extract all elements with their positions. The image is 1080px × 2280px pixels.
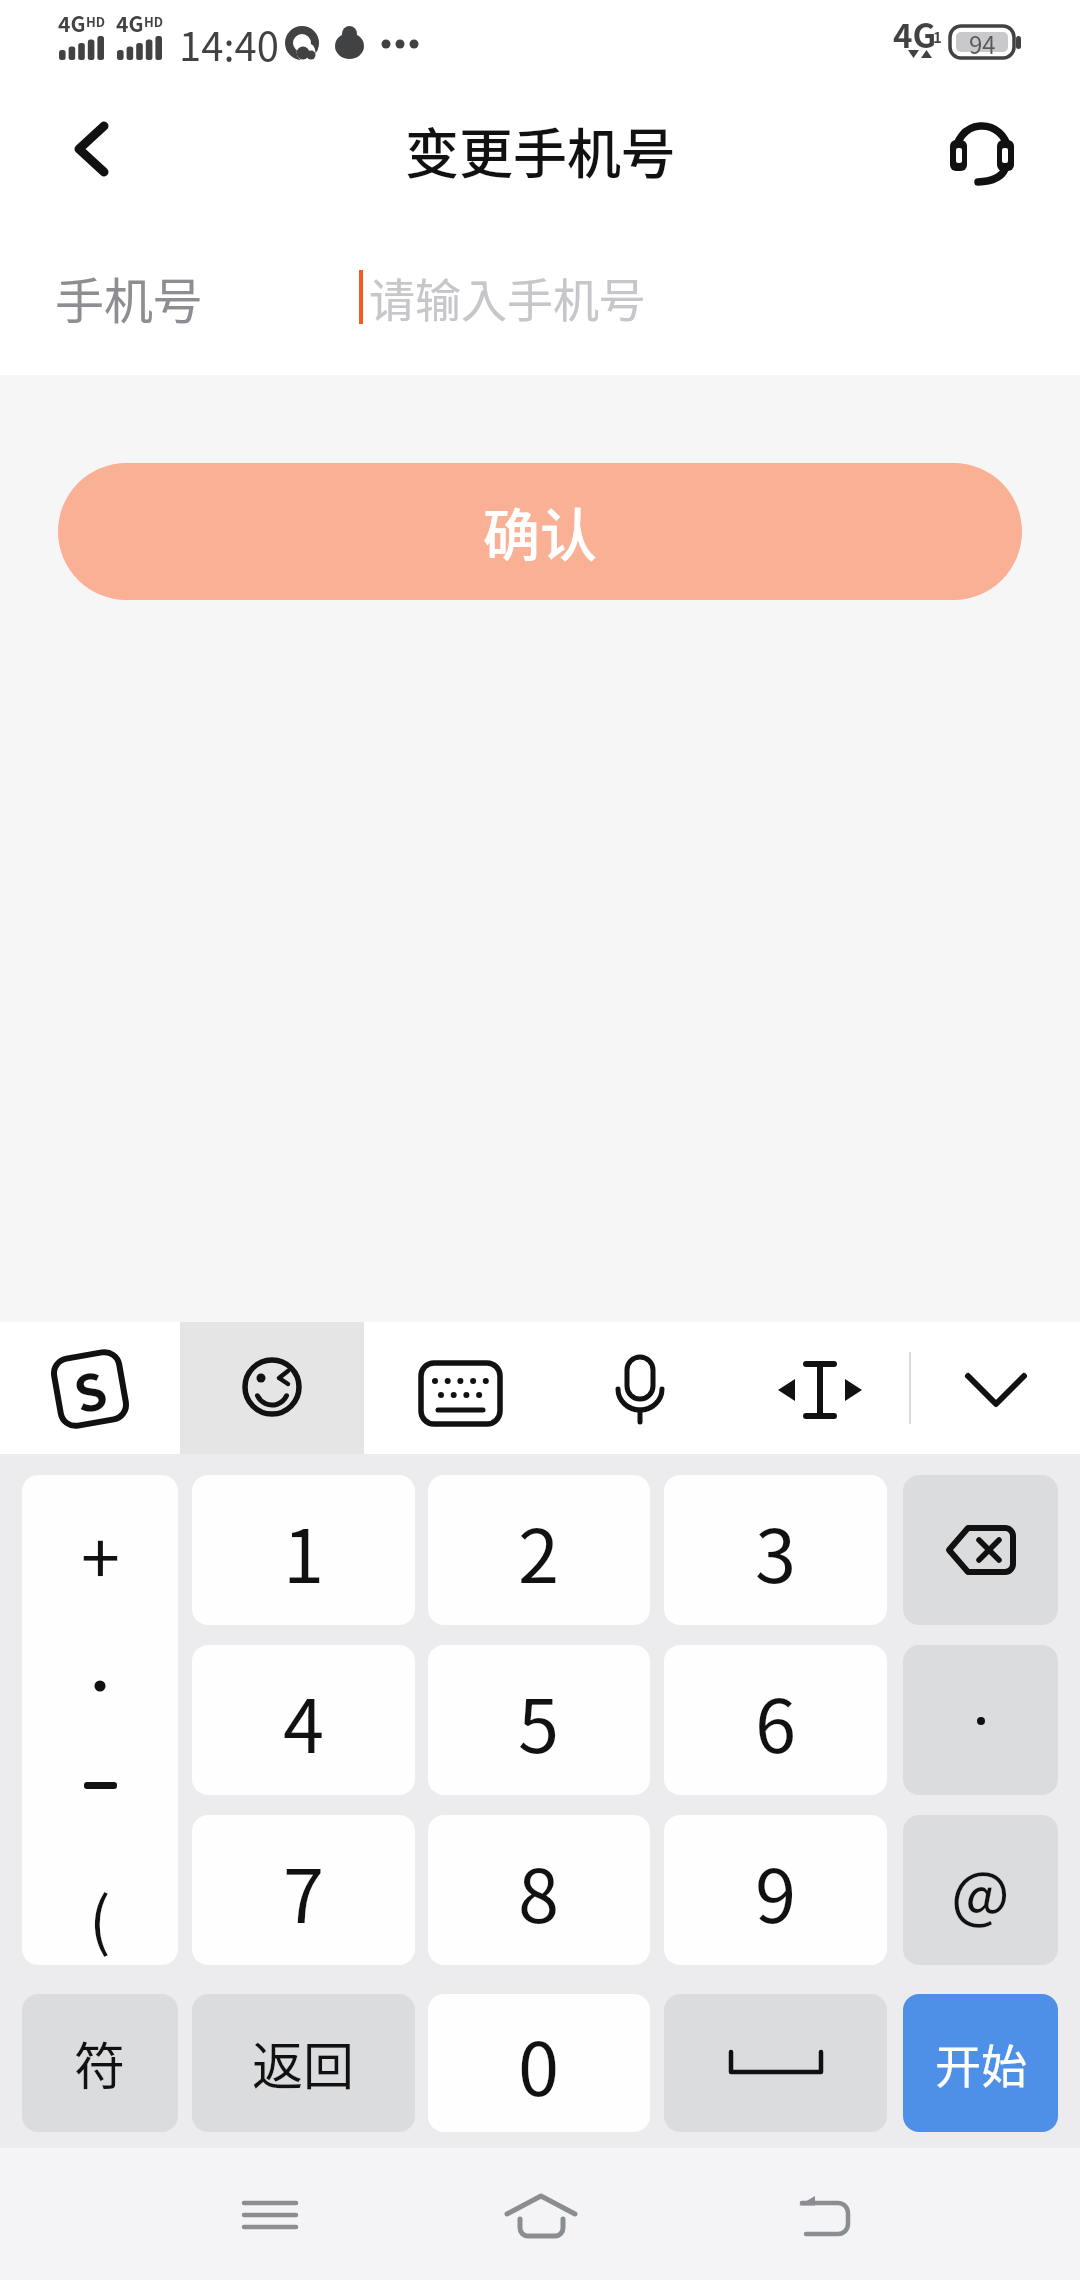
staticText: 9: [755, 1837, 797, 1944]
staticText: +: [81, 1503, 120, 1577]
staticText: 5: [518, 1667, 560, 1774]
button[interactable]: 8: [428, 1815, 650, 1965]
button[interactable]: [180, 1322, 364, 1454]
staticText: @: [951, 1845, 1010, 1935]
staticText: HD: [86, 12, 106, 31]
staticText: 确认: [483, 490, 597, 573]
button[interactable]: [480, 2160, 600, 2270]
staticText: 7: [283, 1837, 325, 1944]
button[interactable]: 符: [22, 1994, 178, 2132]
button[interactable]: 6: [664, 1645, 887, 1795]
staticText: 1: [933, 26, 942, 48]
staticText: 开始: [935, 2030, 1027, 2097]
staticText: 4: [283, 1667, 325, 1774]
staticText: 请输入手机号: [369, 264, 645, 331]
staticText: HD: [144, 12, 164, 31]
button[interactable]: 5: [428, 1645, 650, 1795]
staticText: 4G: [893, 10, 937, 58]
button[interactable]: [903, 1645, 1058, 1795]
staticText: 返回: [252, 2026, 355, 2100]
staticText: 3: [755, 1497, 797, 1604]
button[interactable]: [930, 105, 1035, 200]
staticText: S: [65, 1349, 115, 1429]
button[interactable]: 9: [664, 1815, 887, 1965]
staticText: 符: [74, 2026, 126, 2100]
button[interactable]: S: [45, 1344, 135, 1434]
staticText: 4G: [58, 8, 86, 38]
staticText: 手机号: [55, 262, 203, 333]
staticText: 2: [518, 1497, 560, 1604]
button[interactable]: 7: [192, 1815, 415, 1965]
staticText: 8: [518, 1837, 560, 1944]
button[interactable]: [400, 1340, 520, 1436]
staticText: 6: [755, 1667, 797, 1774]
button[interactable]: 4: [192, 1645, 415, 1795]
button[interactable]: @: [903, 1815, 1058, 1965]
staticText: 4G: [116, 8, 144, 38]
button[interactable]: 返回: [192, 1994, 415, 2132]
button[interactable]: 2: [428, 1475, 650, 1625]
button[interactable]: 3: [664, 1475, 887, 1625]
staticText: 0: [518, 2010, 560, 2117]
staticText: 变更手机号: [405, 111, 675, 189]
staticText: (: [89, 1870, 111, 1962]
staticText: 14:40: [179, 15, 279, 73]
button[interactable]: [903, 1475, 1058, 1625]
button[interactable]: [40, 100, 150, 200]
button[interactable]: 手机号: [0, 220, 1080, 375]
button[interactable]: [210, 2160, 330, 2270]
button[interactable]: [600, 1340, 680, 1436]
button[interactable]: 0: [428, 1994, 650, 2132]
button[interactable]: [770, 1340, 870, 1436]
button[interactable]: [664, 1994, 887, 2132]
button[interactable]: 确认: [58, 463, 1022, 600]
staticText: 1: [283, 1497, 325, 1604]
button[interactable]: +: [22, 1475, 178, 1965]
button[interactable]: 开始: [903, 1994, 1058, 2132]
staticText: 94: [969, 26, 996, 58]
button[interactable]: 1: [192, 1475, 415, 1625]
button[interactable]: [770, 2160, 890, 2270]
button[interactable]: [940, 1340, 1052, 1436]
